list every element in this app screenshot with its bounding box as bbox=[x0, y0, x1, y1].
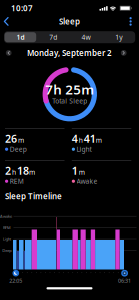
staticText: 06:31 bbox=[118, 277, 131, 284]
staticText: 10:07 bbox=[11, 3, 33, 13]
staticText: REM bbox=[10, 177, 24, 186]
staticText: Deep bbox=[10, 145, 27, 154]
button[interactable]: 4w bbox=[70, 31, 102, 43]
staticText: Awake bbox=[77, 177, 98, 186]
staticText: 7d bbox=[49, 33, 57, 42]
staticText: 7h 25m bbox=[45, 80, 94, 98]
staticText: Deep bbox=[2, 248, 11, 253]
staticText: 26 m bbox=[5, 131, 24, 146]
staticText: Awake bbox=[0, 213, 12, 219]
staticText: Sleep Timeline bbox=[5, 191, 62, 201]
button[interactable] bbox=[6, 50, 12, 56]
button[interactable]: 1d bbox=[4, 31, 37, 43]
staticText: REM bbox=[3, 225, 11, 230]
staticText: Monday, September 2 bbox=[27, 48, 112, 58]
button[interactable] bbox=[121, 50, 127, 56]
staticText: Light bbox=[3, 236, 11, 242]
button[interactable] bbox=[127, 16, 135, 26]
staticText: 2 h 18m bbox=[5, 163, 35, 178]
staticText: Light bbox=[77, 145, 92, 154]
staticText: 1 m bbox=[72, 163, 85, 178]
staticText: 1y bbox=[115, 33, 122, 42]
button[interactable]: 1y bbox=[102, 31, 135, 43]
staticText: 4w bbox=[81, 33, 90, 42]
staticText: Sleep bbox=[59, 16, 80, 27]
staticText: 1d bbox=[16, 33, 24, 42]
staticText: Total Sleep bbox=[52, 96, 87, 105]
button[interactable] bbox=[2, 17, 11, 27]
staticText: 4 h 41m bbox=[72, 131, 102, 146]
button[interactable]: 7d bbox=[37, 31, 70, 43]
staticText: 22:05 bbox=[9, 277, 22, 284]
